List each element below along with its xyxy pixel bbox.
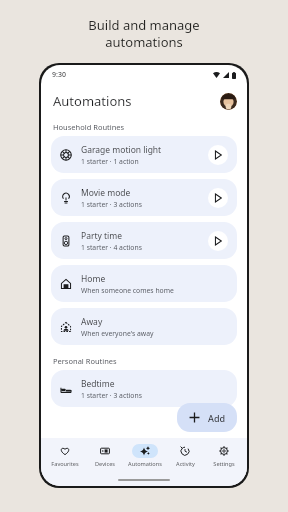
staticText: 1 starter · 4 actions xyxy=(81,243,142,252)
staticText: When everyone's away xyxy=(81,329,154,338)
staticText: Activity xyxy=(176,460,195,468)
button[interactable]: Devices xyxy=(85,443,125,469)
button[interactable]: Bedtime xyxy=(51,370,237,407)
staticText: Personal Routines xyxy=(53,356,117,366)
button[interactable]: Home xyxy=(51,265,237,302)
button[interactable]: Away xyxy=(51,308,237,345)
button[interactable]: Play Garage motion light xyxy=(208,145,228,165)
button[interactable]: Favourites xyxy=(45,443,85,469)
staticText: Settings xyxy=(213,460,235,468)
staticText: Favourites xyxy=(51,460,79,468)
button[interactable]: Automations xyxy=(125,443,165,469)
staticText: Movie mode xyxy=(81,187,131,199)
staticText: 1 starter · 1 action xyxy=(81,157,139,166)
button[interactable]: Add xyxy=(177,403,237,432)
staticText: When someone comes home xyxy=(81,286,174,295)
staticText: Home xyxy=(81,273,106,285)
button[interactable]: Play Party time xyxy=(208,231,228,251)
button[interactable]: Movie mode xyxy=(51,179,237,216)
staticText: Add xyxy=(208,412,226,424)
staticText: Bedtime xyxy=(81,378,115,390)
staticText: Build and manage automations xyxy=(88,16,200,51)
staticText: 1 starter · 3 actions xyxy=(81,200,142,209)
staticText: Away xyxy=(81,316,103,328)
staticText: Automations xyxy=(128,460,162,468)
button[interactable]: Garage motion light xyxy=(51,136,237,173)
staticText: Party time xyxy=(81,230,123,242)
button[interactable]: Party time xyxy=(51,222,237,259)
staticText: Devices xyxy=(95,460,115,468)
button[interactable]: Activity xyxy=(165,443,205,469)
staticText: Automations xyxy=(53,92,132,110)
button[interactable]: Settings xyxy=(205,443,243,469)
button[interactable]: Account xyxy=(220,93,237,110)
staticText: 9:30 xyxy=(52,70,66,80)
staticText: 1 starter · 3 actions xyxy=(81,391,142,400)
staticText: Garage motion light xyxy=(81,144,162,156)
button[interactable]: Play Movie mode xyxy=(208,188,228,208)
staticText: Household Routines xyxy=(53,122,125,132)
